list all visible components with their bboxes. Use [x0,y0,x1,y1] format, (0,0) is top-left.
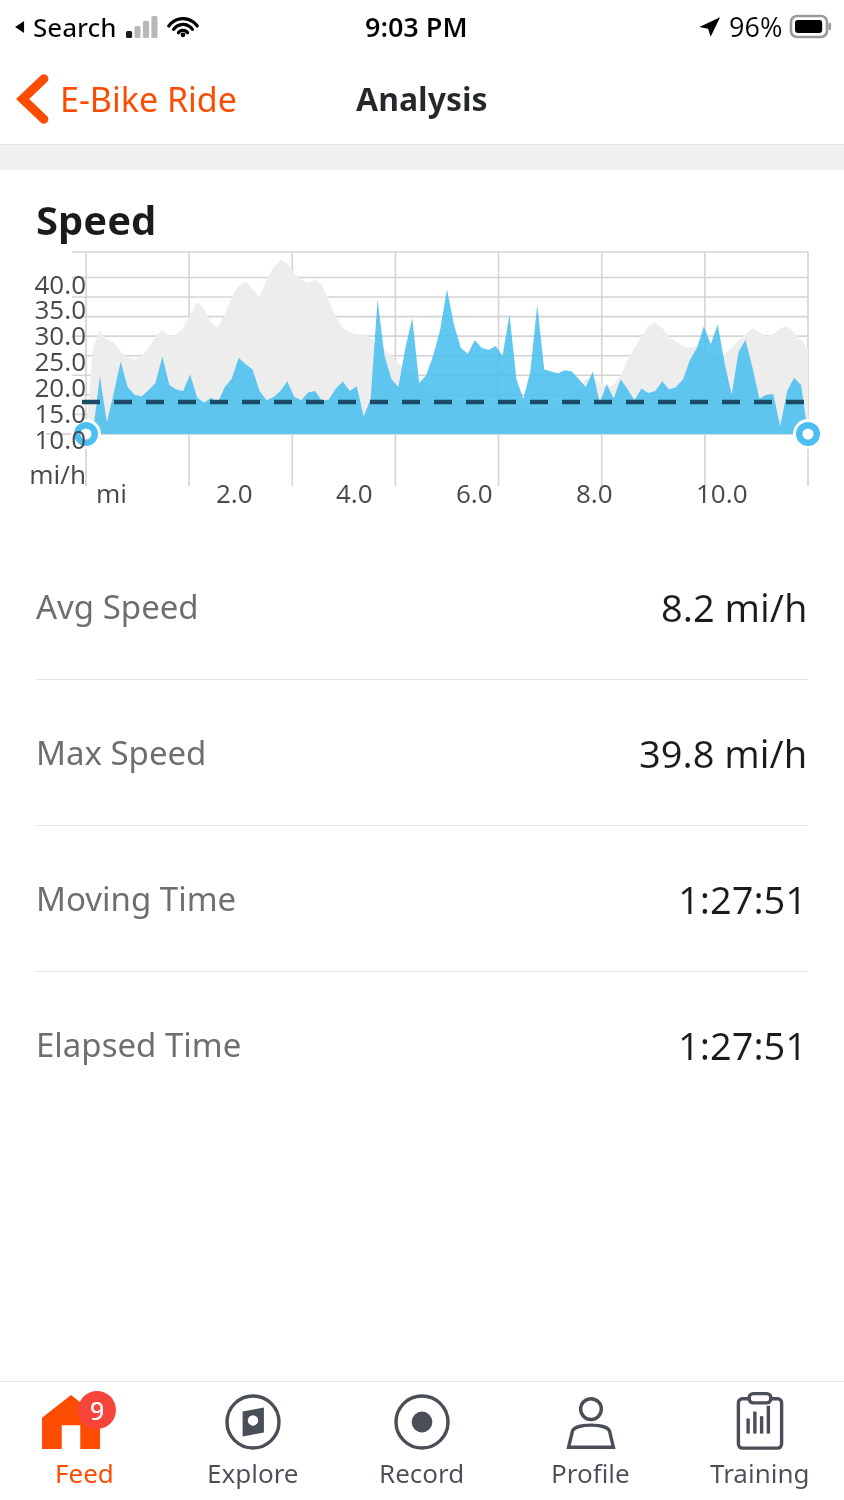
staticText: 4.0 [336,475,373,510]
staticText: Training [710,1455,810,1490]
staticText: 6.0 [456,475,493,510]
staticText: 8.0 [576,475,613,510]
button[interactable]: Max Speed [0,680,844,825]
staticText: Profile [551,1455,630,1490]
button[interactable]: Elapsed Time [0,972,844,1117]
button[interactable]: Explore [168,1382,337,1500]
staticText: Avg Speed [36,584,199,629]
staticText: 40.0 [10,266,86,301]
button[interactable]: Moving Time [0,826,844,971]
staticText: 20.0 [10,369,86,404]
staticText: 39.8 mi/h [639,727,808,779]
button[interactable]: Profile [506,1382,675,1500]
staticText: 9:03 PM [365,8,468,45]
button[interactable]: Training [675,1382,844,1500]
staticText: Search [33,9,117,44]
staticText: 2.0 [216,475,253,510]
staticText: Moving Time [36,876,237,921]
staticText: Speed [36,192,157,246]
button[interactable]: E-Bike Ride [0,70,249,128]
button[interactable]: Avg Speed [0,534,844,679]
button[interactable]: Record [337,1382,506,1500]
staticText: mi [96,475,128,510]
staticText: 1:27:51 [678,1019,808,1071]
staticText: Elapsed Time [36,1022,242,1067]
staticText: 10.0 [10,421,86,456]
staticText: 10.0 [696,475,748,510]
staticText: E-Bike Ride [60,76,237,122]
staticText: 9 [90,1393,105,1427]
staticText: 96% [729,8,783,45]
staticText: Feed [55,1455,114,1490]
staticText: 8.2 mi/h [661,581,808,633]
staticText: 30.0 [10,317,86,352]
staticText: 1:27:51 [678,873,808,925]
staticText: 25.0 [10,343,86,378]
staticText: mi/h [10,456,86,491]
staticText: 35.0 [10,291,86,326]
button[interactable]: Feed [0,1382,168,1500]
staticText: 15.0 [10,395,86,430]
staticText: Analysis [356,77,488,121]
staticText: Record [379,1455,465,1490]
staticText: Explore [207,1455,299,1490]
staticText: Max Speed [36,730,207,775]
